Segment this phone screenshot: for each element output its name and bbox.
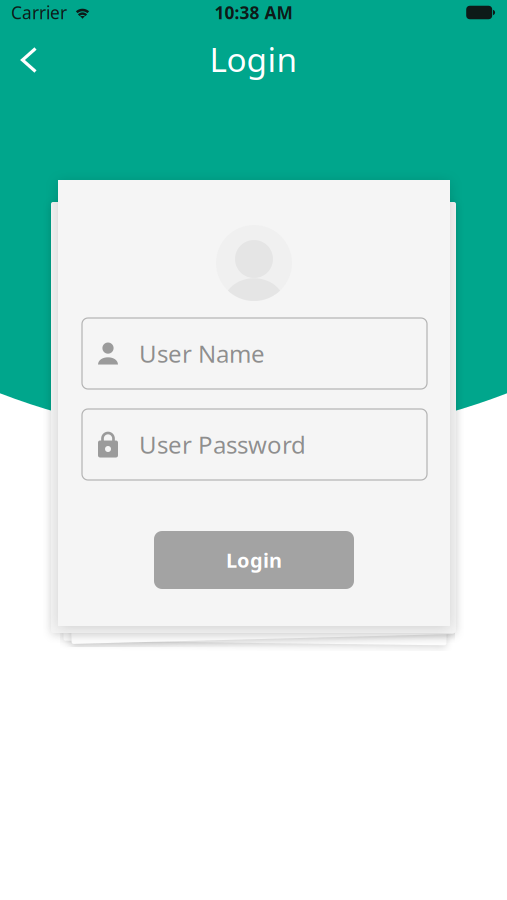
staticText: User Name bbox=[139, 338, 265, 369]
button[interactable]: Back bbox=[5, 36, 53, 84]
staticText: Carrier bbox=[11, 1, 67, 24]
button[interactable]: Login bbox=[154, 531, 354, 589]
button[interactable]: User Name bbox=[82, 318, 427, 389]
staticText: User Password bbox=[139, 429, 306, 460]
staticText: 10:38 AM bbox=[214, 1, 292, 24]
staticText: Login bbox=[209, 37, 297, 81]
staticText: Login bbox=[226, 547, 282, 573]
button[interactable]: User Password bbox=[82, 409, 427, 480]
